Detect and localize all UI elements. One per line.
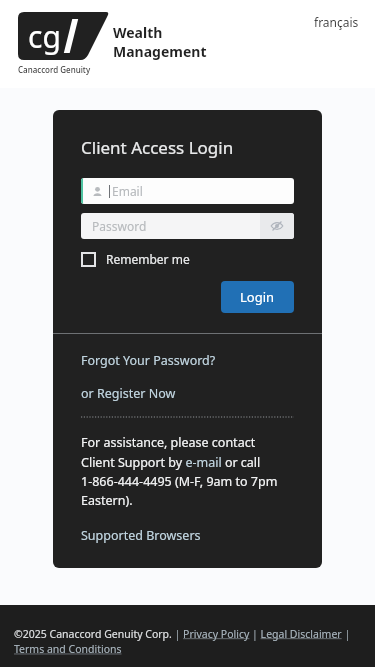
- staticText: Login: [240, 288, 275, 306]
- staticText: ©2025 Canaccord Genuity Corp. | Privacy …: [14, 627, 375, 656]
- staticText: Wealth: [113, 23, 163, 42]
- button[interactable]: User: [81, 178, 294, 204]
- staticText: Client Access Login: [81, 136, 234, 159]
- staticText: Password: [92, 218, 260, 234]
- button[interactable]: Password: [81, 213, 294, 239]
- staticText: français: [314, 14, 359, 30]
- button[interactable]: Show password: [260, 213, 294, 239]
- staticText: cg: [28, 16, 61, 57]
- staticText: For assistance, please contact: [81, 434, 256, 451]
- other: User: [92, 186, 103, 197]
- staticText: Client Support by e-mail or call 1-866-4…: [81, 454, 294, 509]
- staticText: Forgot Your Password?: [81, 352, 216, 369]
- button[interactable]: français: [310, 10, 363, 34]
- staticText: or Register Now: [81, 385, 176, 402]
- staticText: Supported Browsers: [81, 527, 201, 544]
- staticText: Email: [112, 183, 143, 199]
- button[interactable]: or Register Now: [81, 385, 176, 402]
- staticText: Canaccord Genuity: [18, 64, 91, 75]
- staticText: Remember me: [106, 251, 190, 267]
- button[interactable]: Forgot Your Password?: [81, 352, 216, 369]
- staticText: Management: [113, 42, 207, 61]
- button[interactable]: Supported Browsers: [81, 527, 201, 544]
- button[interactable]: Login: [221, 281, 294, 313]
- button[interactable]: Remember me: [81, 251, 190, 267]
